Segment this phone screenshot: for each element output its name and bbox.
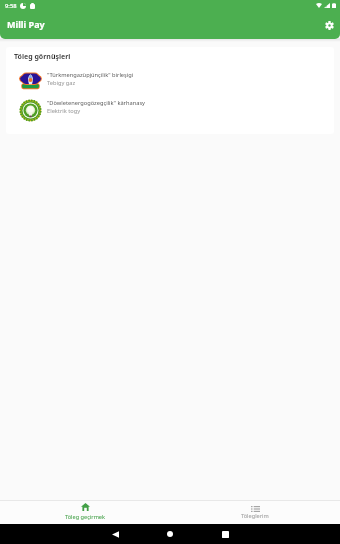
staticText: "Döwletenergogözegçilik" kärhanasy <box>47 99 146 107</box>
button[interactable]: Töleglerim <box>170 501 340 524</box>
staticText: Töleg görnüşleri <box>14 52 71 62</box>
button[interactable]: Töleg geçirmek <box>0 501 170 524</box>
staticText: "Türkmengazüpjünçilik" birleşigi <box>47 71 134 79</box>
staticText: Töleg geçirmek <box>65 513 106 521</box>
button[interactable]: Back <box>105 524 125 544</box>
staticText: Milli Pay <box>7 18 45 30</box>
staticText: Töleglerim <box>241 512 269 520</box>
staticText: 9:58 <box>5 2 17 10</box>
button[interactable]: Recents <box>215 524 235 544</box>
staticText: Elektrik togy <box>47 107 81 115</box>
staticText: Tebigy gaz <box>47 79 76 87</box>
button[interactable]: Home <box>160 524 180 544</box>
button[interactable]: "Türkmengazüpjünçilik" birleşigi <box>6 64 334 92</box>
button[interactable]: Settings <box>319 15 339 35</box>
button[interactable]: "Döwletenergogözegçilik" kärhanasy <box>6 92 334 120</box>
